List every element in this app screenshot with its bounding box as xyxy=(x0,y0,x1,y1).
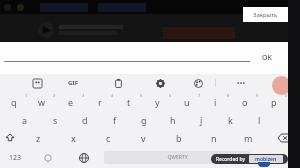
button[interactable]: s xyxy=(40,111,70,129)
button[interactable]: Clipboard xyxy=(112,77,125,90)
button[interactable] xyxy=(252,147,300,168)
staticText: j xyxy=(200,114,203,126)
staticText: t xyxy=(127,96,131,108)
staticText: QWERTY xyxy=(167,154,188,161)
staticText: r xyxy=(98,96,102,108)
staticText: 123 xyxy=(9,153,22,163)
button[interactable]: n xyxy=(196,129,231,147)
staticText: g xyxy=(141,114,147,126)
staticText: Recorded by xyxy=(216,156,246,163)
staticText: mobizen xyxy=(255,156,277,163)
staticText: k xyxy=(228,114,233,126)
staticText: n xyxy=(211,132,217,144)
staticText: 7 xyxy=(198,93,201,98)
staticText: m xyxy=(244,132,253,144)
staticText: w xyxy=(38,96,46,108)
staticText: d xyxy=(82,114,88,126)
button[interactable]: w xyxy=(28,92,56,111)
staticText: p xyxy=(271,96,277,108)
button[interactable]: k xyxy=(216,111,245,129)
button[interactable]: c xyxy=(91,129,126,147)
button[interactable]: r xyxy=(85,92,114,111)
staticText: f xyxy=(113,114,117,126)
staticText: Закрыть xyxy=(253,11,278,19)
button[interactable]: q xyxy=(0,92,28,111)
staticText: y xyxy=(155,96,160,108)
button[interactable]: i xyxy=(201,92,230,111)
button[interactable]: p xyxy=(259,92,288,111)
staticText: 8 xyxy=(227,93,230,98)
button[interactable]: 123 xyxy=(0,147,30,168)
staticText: u xyxy=(184,96,190,108)
button[interactable]: Shift xyxy=(0,129,20,147)
button[interactable]: OK xyxy=(254,50,280,66)
button[interactable]: y xyxy=(143,92,172,111)
button[interactable]: o xyxy=(230,92,259,111)
staticText: q xyxy=(11,96,17,108)
staticText: OK xyxy=(262,53,272,63)
staticText: 9 xyxy=(256,93,259,98)
staticText: 2 xyxy=(53,93,56,98)
button[interactable]: Change language xyxy=(66,147,102,168)
button[interactable]: t xyxy=(114,92,143,111)
button[interactable]: h xyxy=(158,111,187,129)
button[interactable]: QWERTY xyxy=(104,151,250,164)
button[interactable]: v xyxy=(126,129,161,147)
button[interactable]: Settings xyxy=(154,77,167,90)
staticText: v xyxy=(141,132,146,144)
button[interactable]: l xyxy=(245,111,274,129)
button[interactable]: a xyxy=(10,111,40,129)
staticText: 4 xyxy=(111,93,114,98)
button[interactable]: More options xyxy=(235,77,247,89)
button[interactable]: Emoji xyxy=(30,147,66,168)
staticText: l xyxy=(258,114,261,126)
button[interactable]: GIF xyxy=(68,79,78,87)
staticText: 5 xyxy=(140,93,143,98)
staticText: b xyxy=(176,132,182,144)
staticText: h xyxy=(170,114,176,126)
staticText: 6 xyxy=(169,93,172,98)
staticText: x xyxy=(71,132,76,144)
staticText: 0 xyxy=(285,93,288,98)
button[interactable]: Theme xyxy=(192,77,205,90)
staticText: s xyxy=(53,114,58,126)
button[interactable]: Stickers xyxy=(31,77,44,90)
staticText: z xyxy=(36,132,41,144)
button[interactable]: g xyxy=(129,111,158,129)
button[interactable]: u xyxy=(172,92,201,111)
staticText: a xyxy=(22,114,28,126)
button[interactable]: j xyxy=(187,111,216,129)
staticText: e xyxy=(68,96,74,108)
staticText: GIF xyxy=(68,79,78,87)
button[interactable]: d xyxy=(70,111,100,129)
staticText: 1 xyxy=(25,93,28,98)
button[interactable]: e xyxy=(56,92,85,111)
button[interactable]: Закрыть xyxy=(243,7,288,22)
button[interactable]: z xyxy=(20,129,56,147)
staticText: i xyxy=(214,96,217,108)
staticText: 3 xyxy=(82,93,85,98)
other: Badge xyxy=(272,76,291,95)
staticText: c xyxy=(106,132,111,144)
button[interactable]: m xyxy=(231,129,266,147)
staticText: o xyxy=(242,96,248,108)
button[interactable]: f xyxy=(100,111,129,129)
button[interactable]: b xyxy=(161,129,196,147)
button[interactable]: x xyxy=(56,129,91,147)
button[interactable]: Backspace xyxy=(266,129,300,147)
